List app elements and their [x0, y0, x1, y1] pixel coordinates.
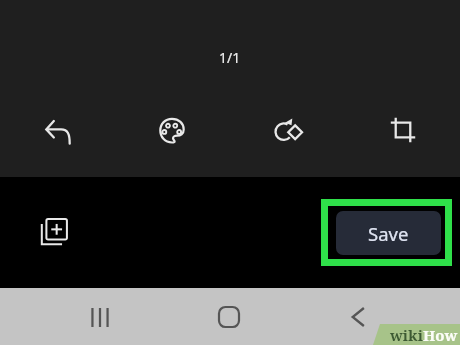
- staticText: How: [423, 325, 458, 345]
- button[interactable]: Back: [338, 297, 378, 337]
- button[interactable]: Home: [209, 297, 249, 337]
- staticText: wiki: [390, 325, 423, 345]
- staticText: Save: [368, 221, 409, 246]
- button[interactable]: Rotate: [266, 108, 310, 152]
- staticText: 1/1: [219, 48, 241, 67]
- button[interactable]: Crop: [381, 108, 425, 152]
- button[interactable]: Recents: [80, 297, 120, 337]
- button[interactable]: Save: [336, 211, 441, 255]
- button[interactable]: Filters: [150, 108, 194, 152]
- button[interactable]: Undo: [36, 110, 80, 154]
- button[interactable]: Add to album: [36, 213, 72, 249]
